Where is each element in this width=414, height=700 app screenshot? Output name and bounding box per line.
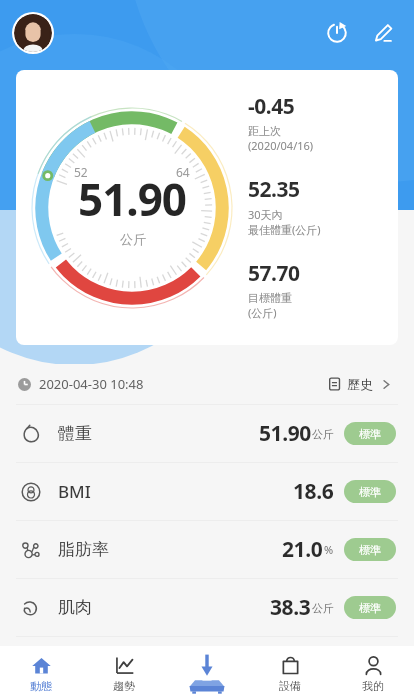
staticText: 動態	[30, 679, 52, 693]
staticText: 標準	[359, 543, 381, 557]
staticText: 最佳體重(公斤)	[248, 222, 321, 237]
staticText: 標準	[359, 427, 381, 441]
staticText: 公斤	[120, 231, 146, 247]
button[interactable]: 我的	[331, 646, 414, 700]
button[interactable]: 脂肪率	[0, 521, 414, 578]
staticText: 體重	[58, 423, 92, 444]
staticText: -0.45	[248, 92, 295, 121]
button[interactable]: Sync	[318, 14, 356, 52]
button[interactable]: 體重	[0, 405, 414, 462]
staticText: 設備	[279, 679, 301, 693]
button[interactable]: 設備	[248, 646, 331, 700]
button[interactable]: 肌肉	[0, 579, 414, 636]
staticText: (2020/04/16)	[248, 138, 314, 153]
staticText: 公斤	[312, 601, 334, 615]
staticText: 52.35	[248, 175, 300, 204]
staticText: 57.70	[248, 259, 300, 288]
staticText: 21.0	[282, 535, 323, 564]
staticText: BMI	[58, 480, 91, 503]
button[interactable]: 歷史	[324, 372, 396, 396]
staticText: 64	[176, 164, 190, 180]
staticText: 51.90	[78, 169, 187, 229]
button[interactable]: 動態	[0, 646, 82, 700]
button[interactable]: BMI	[0, 463, 414, 520]
staticText: (公斤)	[248, 305, 277, 320]
staticText: 我的	[362, 679, 384, 693]
staticText: 目標體重	[248, 291, 292, 305]
button[interactable]: 趨勢	[82, 646, 165, 700]
staticText: 30天內	[248, 207, 283, 222]
staticText: 標準	[359, 601, 381, 615]
button[interactable]: Measure	[165, 646, 248, 700]
staticText: 38.3	[270, 593, 311, 622]
staticText: 2020-04-30 10:48	[39, 375, 144, 393]
staticText: 18.6	[293, 477, 334, 506]
button[interactable]: Profile	[14, 14, 52, 52]
staticText: 51.90	[259, 419, 311, 448]
staticText: 脂肪率	[58, 539, 109, 560]
staticText: 趨勢	[113, 679, 135, 693]
button[interactable]: Edit	[364, 14, 402, 52]
staticText: 距上次	[248, 124, 281, 138]
staticText: %	[324, 542, 334, 557]
staticText: 肌肉	[58, 597, 92, 618]
staticText: 公斤	[312, 427, 334, 441]
staticText: 標準	[359, 485, 381, 499]
staticText: 歷史	[347, 376, 373, 392]
staticText: 52	[74, 164, 88, 180]
